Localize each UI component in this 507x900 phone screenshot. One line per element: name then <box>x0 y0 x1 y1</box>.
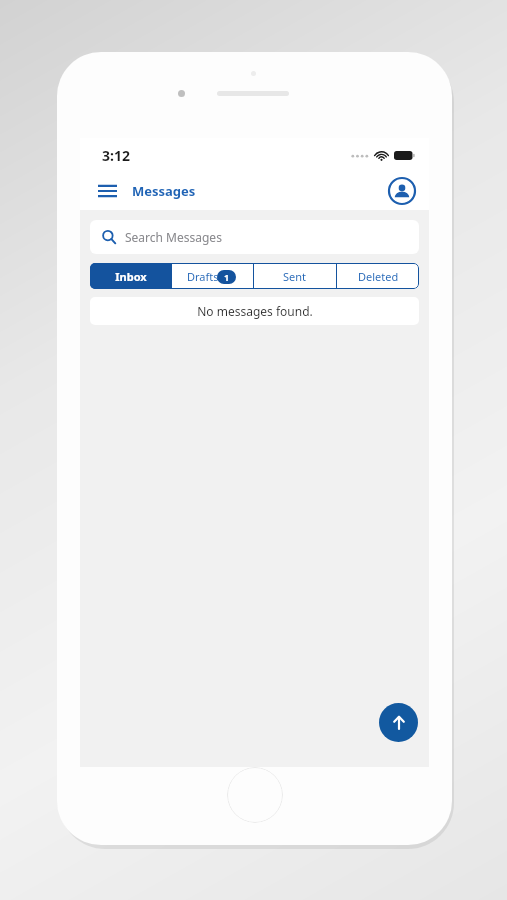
button[interactable]: Search Messages <box>90 220 419 254</box>
staticText: 1 <box>224 271 230 283</box>
button[interactable]: Drafts <box>172 263 253 289</box>
button[interactable]: Account <box>388 177 416 205</box>
staticText: Messages <box>132 182 196 200</box>
staticText: Sent <box>283 269 307 284</box>
button[interactable]: Menu <box>90 176 124 206</box>
button[interactable]: Inbox <box>90 263 171 289</box>
staticText: Inbox <box>115 269 147 284</box>
button[interactable]: Deleted <box>337 263 419 289</box>
button[interactable]: Compose message <box>379 703 418 742</box>
staticText: Deleted <box>358 269 399 284</box>
staticText: No messages found. <box>197 303 313 319</box>
staticText: Drafts <box>187 269 219 284</box>
staticText: Search Messages <box>125 229 222 245</box>
staticText: 3:12 <box>102 146 130 165</box>
button[interactable]: Sent <box>254 263 336 289</box>
